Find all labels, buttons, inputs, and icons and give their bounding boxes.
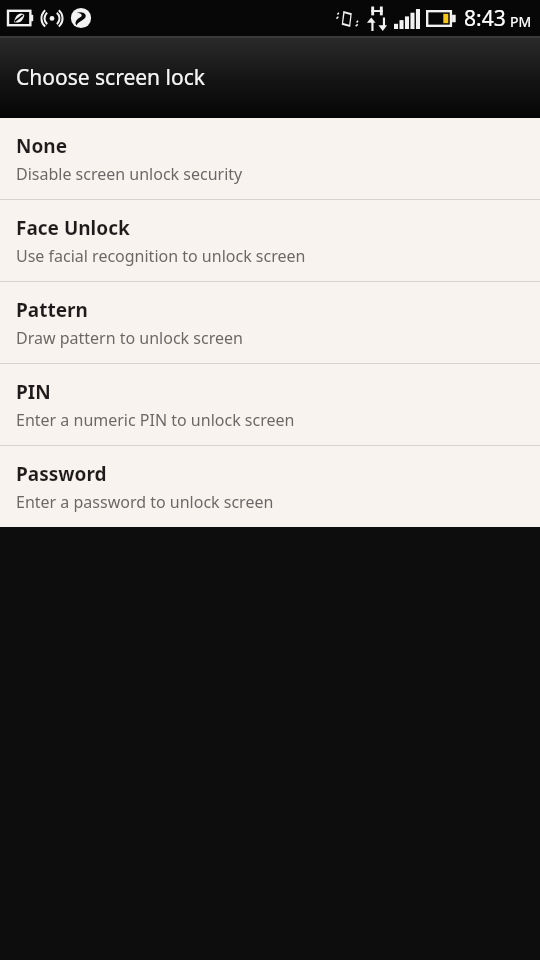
staticText: 8:43 — [464, 4, 506, 33]
staticText: Enter a password to unlock screen — [16, 491, 274, 513]
staticText: PIN — [16, 379, 51, 405]
button[interactable]: PIN — [0, 364, 540, 445]
staticText: Draw pattern to unlock screen — [16, 327, 243, 349]
staticText: PM — [510, 12, 532, 31]
staticText: None — [16, 133, 68, 159]
staticText: Password — [16, 461, 107, 487]
staticText: Use facial recognition to unlock screen — [16, 245, 306, 267]
button[interactable]: None — [0, 118, 540, 199]
button[interactable]: Password — [0, 446, 540, 527]
staticText: Enter a numeric PIN to unlock screen — [16, 409, 295, 431]
staticText: Disable screen unlock security — [16, 163, 243, 185]
staticText: Face Unlock — [16, 215, 130, 241]
staticText: Pattern — [16, 297, 88, 323]
button[interactable]: Pattern — [0, 282, 540, 363]
button[interactable]: Face Unlock — [0, 200, 540, 281]
staticText: Choose screen lock — [16, 63, 205, 92]
